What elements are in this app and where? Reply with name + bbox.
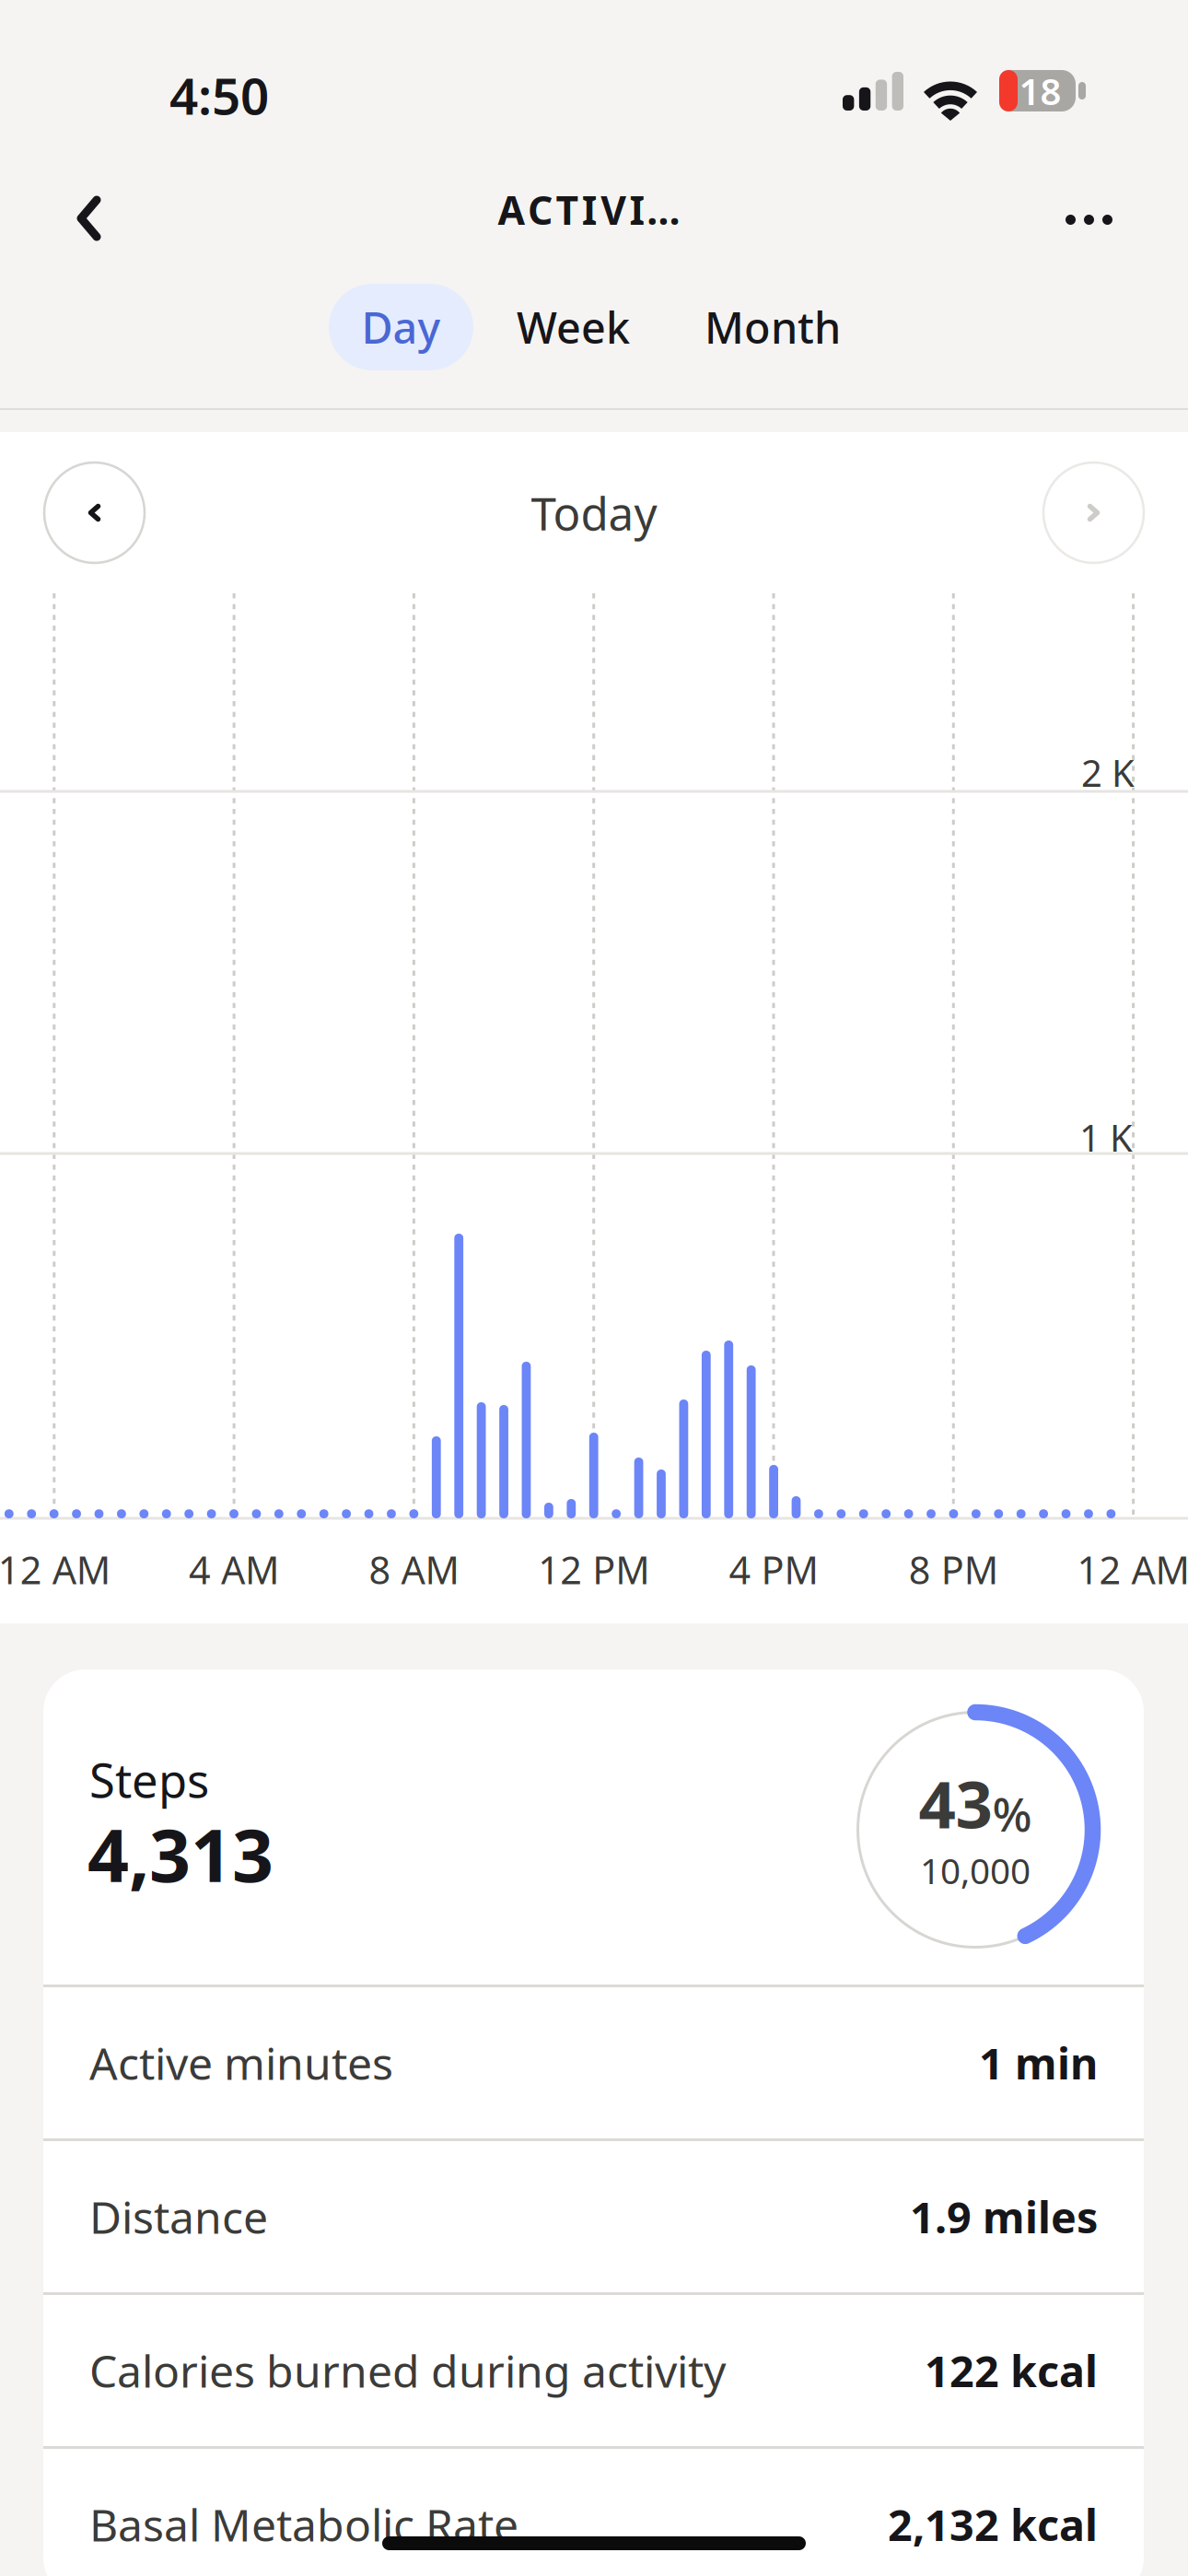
button[interactable]: Next day — [1043, 463, 1144, 563]
button[interactable]: More options — [1021, 174, 1157, 265]
button[interactable]: Day — [329, 284, 473, 370]
staticText: Week — [517, 299, 630, 356]
button[interactable]: Basal Metabolic Rate — [43, 2449, 1144, 2576]
button[interactable]: Calories burned during activity — [43, 2295, 1144, 2446]
staticText: 122 kcal — [925, 2342, 1098, 2399]
button[interactable]: Week — [496, 284, 650, 370]
staticText: 10,000 — [920, 1847, 1031, 1894]
staticText: 4 AM — [189, 1544, 279, 1595]
staticText: 12 AM — [1077, 1544, 1188, 1595]
staticText: 8 PM — [909, 1544, 998, 1595]
staticText: 18 — [1019, 66, 1061, 115]
staticText: Month — [705, 299, 841, 356]
staticText: 4 PM — [729, 1544, 818, 1595]
staticText: 8 AM — [369, 1544, 459, 1595]
staticText: 12 PM — [538, 1544, 649, 1595]
staticText: Distance — [89, 2187, 268, 2246]
staticText: 2 K — [1081, 748, 1135, 797]
staticText: Active minutes — [89, 2033, 393, 2092]
staticText: 4:50 — [169, 62, 269, 129]
staticText: ACTIVITY — [498, 183, 699, 236]
staticText: 2,132 kcal — [888, 2496, 1098, 2553]
staticText: % — [992, 1782, 1032, 1844]
staticText: 1 min — [979, 2034, 1098, 2091]
staticText: 4,313 — [87, 1806, 274, 1902]
button[interactable]: Active minutes — [43, 1987, 1144, 2138]
button[interactable]: Month — [684, 284, 861, 370]
staticText: Day — [361, 299, 441, 356]
button[interactable]: Distance — [43, 2141, 1144, 2292]
staticText: 1.9 miles — [910, 2188, 1098, 2245]
staticText: Today — [531, 482, 657, 543]
staticText: Steps — [89, 1749, 209, 1811]
staticText: 1 K — [1079, 1113, 1133, 1162]
staticText: 12 AM — [0, 1544, 110, 1595]
staticText: Basal Metabolic Rate — [89, 2495, 518, 2554]
button[interactable]: Previous day — [44, 463, 145, 563]
staticText: 43 — [919, 1760, 992, 1846]
staticText: Calories burned during activity — [89, 2341, 726, 2400]
button[interactable]: Back — [37, 176, 145, 261]
